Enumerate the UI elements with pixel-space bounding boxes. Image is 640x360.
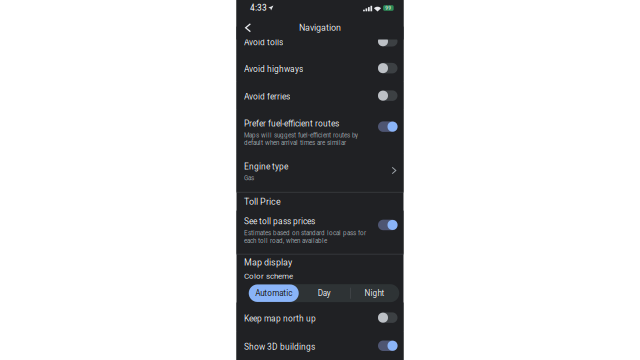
staticText: Night	[364, 288, 384, 298]
staticText: Keep map north up	[244, 314, 316, 324]
staticText: 99	[385, 5, 391, 11]
staticText: 4:33	[250, 3, 267, 13]
staticText: Automatic	[255, 288, 292, 298]
button[interactable]: Avoid highways	[236, 54, 403, 82]
button[interactable]: Back	[239, 19, 256, 36]
staticText: Engine type	[244, 162, 288, 171]
staticText: Prefer fuel-efficient routes	[244, 119, 339, 128]
button[interactable]: Engine type	[236, 153, 403, 192]
button[interactable]: Prefer fuel-efficient routes	[236, 110, 403, 153]
staticText: Avoid ferries	[244, 92, 290, 102]
staticText: Toll Price	[244, 196, 281, 207]
staticText: Avoid tolls	[244, 37, 283, 47]
button[interactable]: Show 3D buildings	[236, 331, 403, 360]
staticText: default when arrival times are similar	[244, 139, 346, 147]
button[interactable]: See toll pass prices	[236, 211, 403, 254]
staticText: Avoid highways	[244, 64, 303, 74]
staticText: Color scheme	[244, 271, 293, 281]
staticText: Map display	[244, 257, 292, 268]
button[interactable]: Day	[299, 284, 350, 302]
staticText: Day	[318, 288, 331, 298]
staticText: Show 3D buildings	[244, 342, 315, 352]
button[interactable]: Automatic	[249, 284, 299, 302]
button[interactable]: Keep map north up	[236, 302, 403, 331]
staticText: Gas	[244, 174, 254, 182]
staticText: See toll pass prices	[244, 216, 315, 226]
staticText: each toll road, when available	[244, 237, 327, 244]
button[interactable]: Night	[350, 284, 399, 302]
button[interactable]: Avoid ferries	[236, 82, 403, 110]
staticText: Estimates based on standard local pass f…	[244, 229, 366, 237]
staticText: Navigation	[299, 22, 341, 33]
button[interactable]: Avoid tolls	[236, 27, 403, 54]
staticText: Maps will suggest fuel-efficient routes …	[244, 132, 358, 139]
